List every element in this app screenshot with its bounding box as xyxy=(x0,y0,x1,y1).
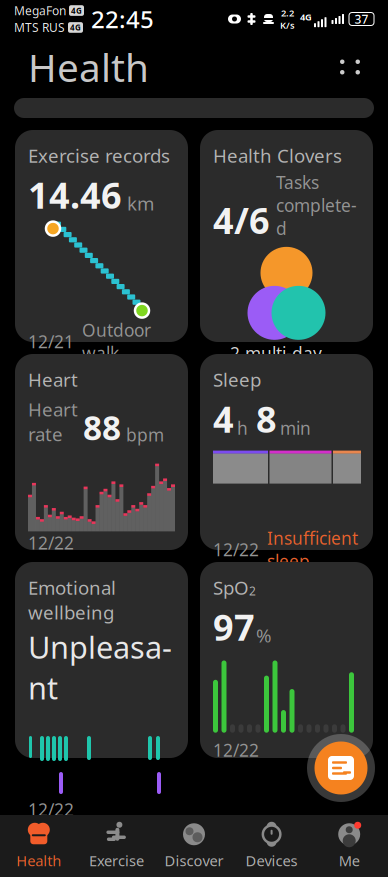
staticText: SpO xyxy=(213,575,249,600)
staticText: 37 xyxy=(354,11,368,27)
button[interactable]: Exercise records xyxy=(15,130,188,342)
staticText: 12/22 xyxy=(28,531,74,554)
staticText: Me xyxy=(339,851,360,870)
staticText: min xyxy=(280,417,311,440)
staticText: bpm xyxy=(126,423,164,446)
button[interactable]: SpO xyxy=(200,562,373,758)
staticText: 2 xyxy=(249,583,256,599)
staticText: Outdoor walk xyxy=(82,319,151,365)
button[interactable]: More options xyxy=(328,45,372,89)
staticText: K/s xyxy=(280,19,295,31)
staticText: Devices xyxy=(246,851,298,870)
staticText: MTS RUS xyxy=(14,19,65,35)
staticText: Exercise records xyxy=(28,143,170,168)
staticText: 4G xyxy=(71,5,82,16)
staticText: Sleep xyxy=(213,367,261,392)
button[interactable]: Discover xyxy=(155,815,233,877)
staticText: Insufficient sleep xyxy=(267,527,358,573)
staticText: 14.46 xyxy=(28,171,122,219)
staticText: 4G xyxy=(300,11,312,23)
staticText: 8 xyxy=(256,395,277,443)
staticText: MegaFon xyxy=(14,3,66,18)
staticText: 22:45 xyxy=(91,3,154,35)
staticText: % xyxy=(256,623,272,648)
staticText: 12/22 xyxy=(28,798,74,821)
staticText: h xyxy=(237,417,248,440)
staticText: 4/6 xyxy=(213,196,270,244)
staticText: Health xyxy=(16,851,61,870)
button[interactable]: Me xyxy=(310,815,388,877)
button[interactable]: Emotional wellbeing xyxy=(15,562,188,758)
staticText: 4 xyxy=(213,395,234,443)
button[interactable]: Exercise xyxy=(78,815,155,877)
staticText: Unpleasant xyxy=(28,627,172,708)
staticText: 12/22 xyxy=(213,739,259,762)
button[interactable]: Heart xyxy=(15,354,188,550)
staticText: Tasks completed xyxy=(276,171,357,240)
staticText: 88 xyxy=(83,405,121,449)
staticText: km xyxy=(127,191,154,216)
staticText: Health Clovers xyxy=(213,143,342,168)
button[interactable]: Health Clovers xyxy=(200,130,373,342)
button[interactable]: Health xyxy=(0,815,78,877)
button[interactable]: Sleep xyxy=(200,354,373,550)
staticText: Heart rate xyxy=(28,397,78,446)
staticText: Emotional wellbeing xyxy=(28,575,116,625)
staticText: 2 multi-day streaks xyxy=(230,342,322,388)
staticText: 12/21 xyxy=(28,330,74,353)
staticText: Heart xyxy=(28,367,78,392)
staticText: 2.2 xyxy=(281,7,294,19)
staticText: 4G xyxy=(70,22,81,33)
staticText: 12/22 xyxy=(213,538,259,561)
staticText: Health xyxy=(28,41,149,93)
staticText: Exercise xyxy=(89,851,144,870)
staticText: Discover xyxy=(164,851,223,870)
button[interactable]: Devices xyxy=(233,815,310,877)
button[interactable]: Add record xyxy=(307,734,375,802)
staticText: 97 xyxy=(213,603,255,651)
